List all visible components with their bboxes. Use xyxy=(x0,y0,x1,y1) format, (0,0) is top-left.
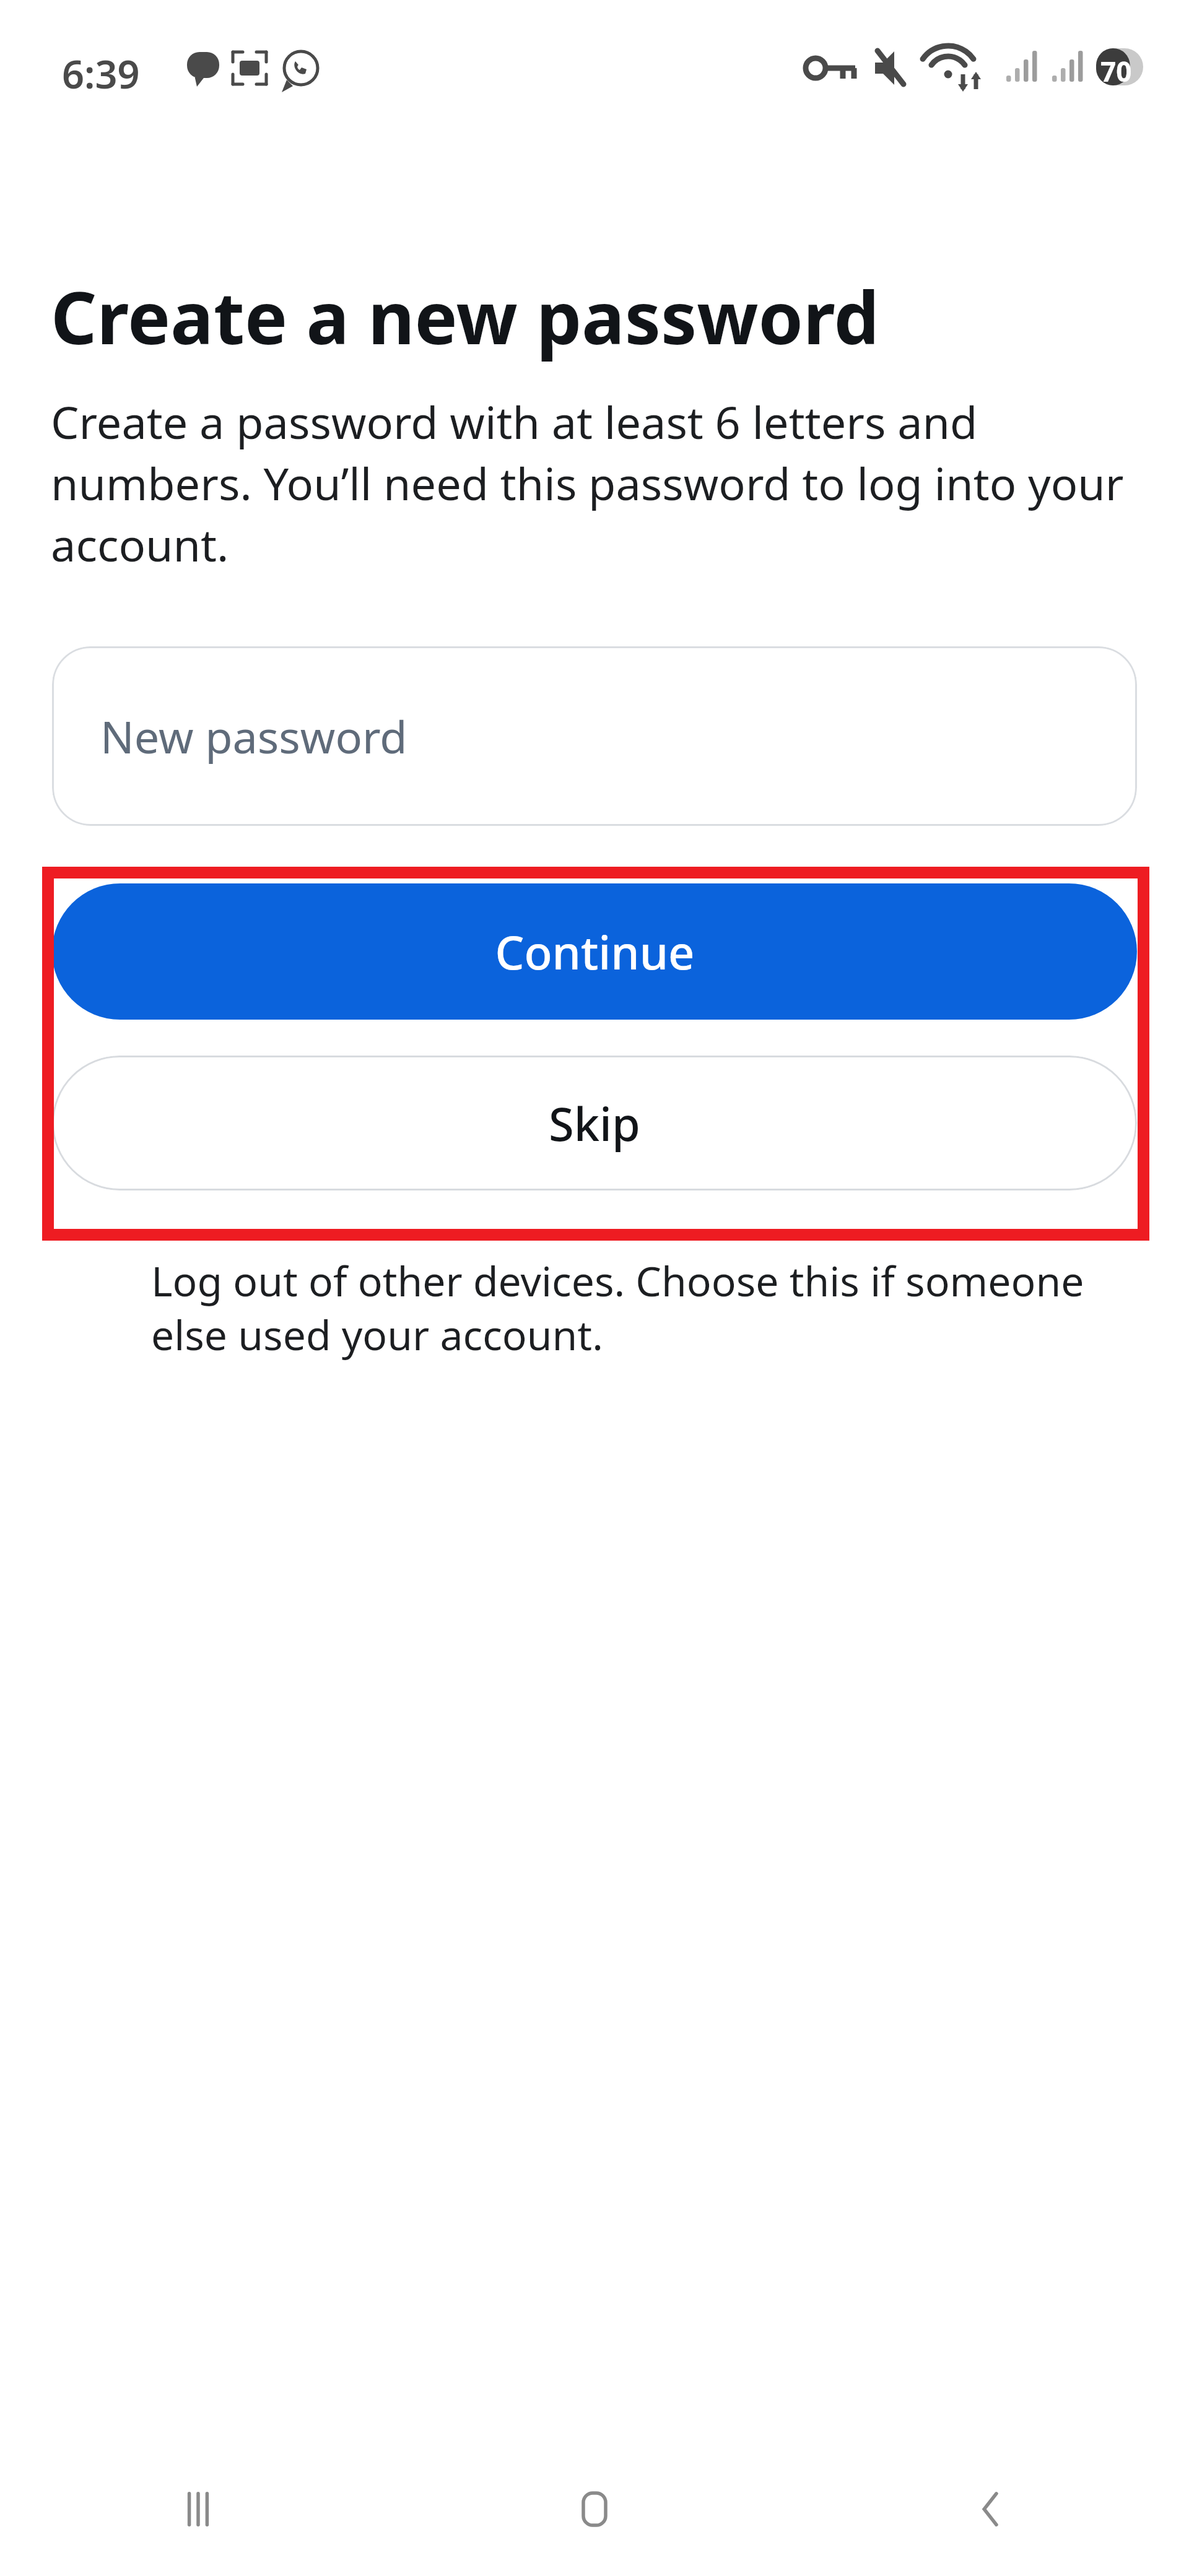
button[interactable]: New password xyxy=(52,646,1137,826)
button[interactable]: Recent apps xyxy=(0,2447,396,2571)
staticText: New password xyxy=(100,706,407,766)
button[interactable]: Skip xyxy=(52,1056,1137,1190)
staticText: 6:39 xyxy=(62,47,140,100)
staticText: Create a password with at least 6 letter… xyxy=(51,391,1144,575)
staticText: Log out of other devices. Choose this if… xyxy=(151,1252,1108,1362)
button[interactable]: Back xyxy=(793,2447,1189,2571)
staticText: Continue xyxy=(495,921,695,983)
staticText: 70 xyxy=(1100,53,1132,90)
button[interactable]: Home xyxy=(396,2447,793,2571)
staticText: Skip xyxy=(549,1092,640,1155)
button[interactable]: Continue xyxy=(52,883,1137,1020)
staticText: Create a new password xyxy=(51,267,879,365)
